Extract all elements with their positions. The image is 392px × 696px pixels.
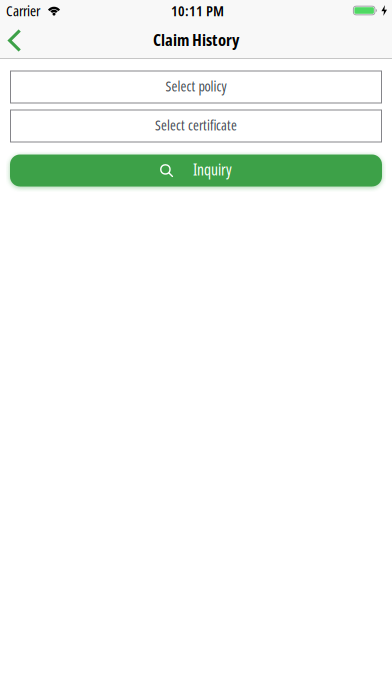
staticText: Inquiry xyxy=(193,159,232,180)
button[interactable]: Back xyxy=(0,21,35,58)
button[interactable]: Inquiry xyxy=(10,154,382,186)
button[interactable]: Select policy xyxy=(10,70,382,103)
staticText: Carrier xyxy=(6,0,40,20)
button[interactable]: Select certificate xyxy=(10,109,382,142)
staticText: Claim History xyxy=(153,28,239,51)
staticText: Select policy xyxy=(165,76,226,96)
staticText: Select certificate xyxy=(155,115,237,135)
staticText: 10:11 PM xyxy=(171,0,224,20)
